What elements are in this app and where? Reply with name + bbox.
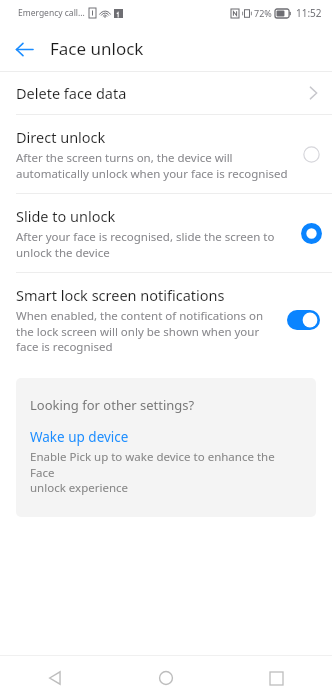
staticText: Delete face data [16, 83, 127, 103]
button[interactable]: Slide to unlock [0, 194, 332, 272]
staticText: Enable Pick up to wake device to enhance… [30, 449, 302, 495]
staticText: Wake up device [30, 428, 129, 446]
staticText: Face unlock [50, 37, 144, 60]
staticText: Smart lock screen notifications [16, 285, 225, 305]
staticText: When enabled, the content of notificatio… [16, 308, 264, 354]
staticText: Slide to unlock [16, 206, 116, 226]
button[interactable]: Home [110, 656, 221, 700]
staticText: After the screen turns on, the device wi… [16, 150, 288, 181]
button[interactable]: Wake up device [30, 428, 129, 446]
button[interactable]: Smart lock screen notifications [0, 273, 332, 366]
button[interactable]: Back [0, 656, 110, 700]
button[interactable]: Delete face data [0, 72, 332, 114]
button[interactable]: Recent apps [221, 656, 332, 700]
staticText: Emergency call... [18, 7, 85, 19]
button[interactable]: Back [8, 33, 40, 65]
staticText: Direct unlock [16, 127, 106, 147]
staticText: After your face is recognised, slide the… [16, 229, 275, 260]
button[interactable]: Direct unlock [0, 115, 332, 193]
staticText: 72% [254, 7, 272, 19]
staticText: Looking for other settings? [30, 396, 195, 414]
staticText: 11:52 [296, 6, 322, 20]
